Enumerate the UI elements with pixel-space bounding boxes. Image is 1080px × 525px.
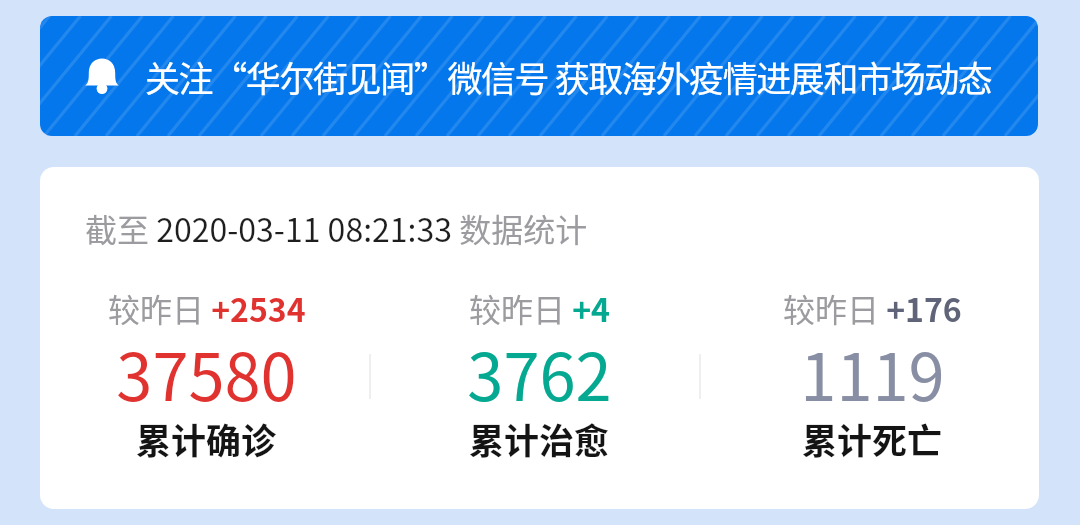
staticText: 37580: [116, 326, 297, 420]
button[interactable]: Notification: [40, 16, 1038, 136]
staticText: 关注“华尔街见闻”微信号 获取海外疫情进展和市场动态: [145, 51, 992, 102]
staticText: 较昨日 +4: [469, 285, 610, 331]
staticText: 累计治愈: [469, 413, 610, 464]
staticText: 较昨日 +176: [783, 285, 962, 331]
staticText: 1119: [800, 326, 945, 420]
other: Notification: [82, 56, 122, 96]
staticText: 较昨日 +2534: [108, 285, 306, 331]
staticText: 截至 2020-03-11 08:21:33 数据统计: [85, 205, 588, 251]
staticText: 3762: [467, 326, 612, 420]
staticText: 累计确诊: [136, 413, 277, 464]
staticText: 累计死亡: [802, 413, 943, 464]
